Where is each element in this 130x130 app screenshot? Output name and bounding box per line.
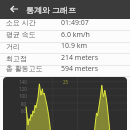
staticText: 통계와 그래프 [26,4,77,15]
button[interactable]: Back [0,0,26,19]
staticText: 01:49:07 [61,18,89,28]
staticText: 60 [21,108,27,114]
staticText: 10.9 km [61,41,87,51]
staticText: 100 [19,93,27,99]
staticText: 소요 시간 [6,18,36,28]
button[interactable]: 소요 시간 [0,19,130,31]
staticText: 최고점 [6,54,27,63]
staticText: 214 meters [61,53,99,63]
staticText: 594 meters [61,64,99,74]
staticText: 6.0 km/h [61,30,90,40]
staticText: 120 [19,86,27,92]
staticText: 140 [19,79,27,85]
staticText: 평균 속도 [6,30,36,40]
button[interactable]: 거리 [0,42,130,54]
staticText: 80 [21,101,27,107]
button[interactable]: 최고점 [0,54,130,66]
button[interactable]: 평균 속도 [0,31,130,43]
staticText: 25 [63,79,69,85]
button[interactable]: 총 활동고도 [0,65,130,77]
staticText: 총 활동고도 [6,64,43,74]
staticText: 거리 [6,42,20,51]
